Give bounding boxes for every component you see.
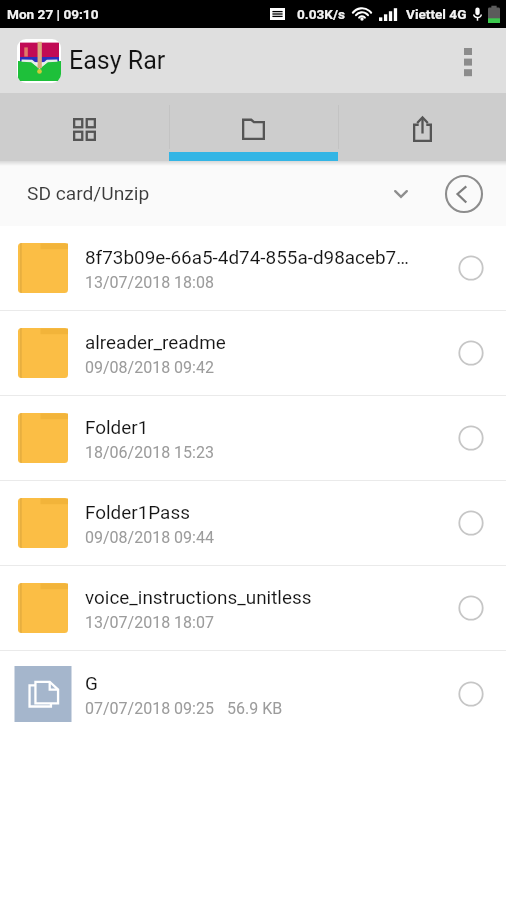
staticText: Mon 27 | 09:10 — [7, 6, 99, 22]
button[interactable]: Grid view — [0, 93, 168, 161]
button[interactable]: Select Folder1 — [449, 416, 493, 460]
button[interactable]: voice_instructions_unitless — [0, 566, 506, 651]
button[interactable]: 8f73b09e-66a5-4d74-855a-d98aceb7… — [0, 226, 506, 311]
staticText: Viettel 4G — [406, 6, 467, 22]
staticText: SD card/Unzip — [27, 182, 150, 205]
staticText: 18/06/2018 15:23 — [85, 443, 214, 462]
button[interactable]: alreader_readme — [0, 311, 506, 396]
button[interactable]: Select voice_instructions_unitless — [449, 586, 493, 630]
staticText: 09/08/2018 09:42 — [85, 358, 214, 377]
button[interactable]: Share — [337, 93, 506, 161]
staticText: 0.03K/s — [297, 6, 346, 22]
button[interactable]: Select 8f73b09e-66a5-4d74-855a-d98aceb7… — [449, 246, 493, 290]
staticText: voice_instructions_unitless — [85, 586, 312, 608]
staticText: 13/07/2018 18:08 — [85, 273, 214, 292]
staticText: G — [85, 672, 98, 694]
button[interactable]: Folder1 — [0, 396, 506, 481]
button[interactable]: Back — [440, 170, 488, 218]
staticText: 09/08/2018 09:44 — [85, 528, 214, 547]
button[interactable]: More options — [429, 28, 506, 93]
staticText: 8f73b09e-66a5-4d74-855a-d98aceb7… — [85, 246, 409, 268]
button[interactable]: Select alreader_readme — [449, 331, 493, 375]
staticText: 56.9 KB — [227, 699, 283, 718]
staticText: Folder1Pass — [85, 501, 190, 523]
staticText: Folder1 — [85, 416, 149, 438]
staticText: 07/07/2018 09:25 — [85, 699, 214, 718]
staticText: alreader_readme — [85, 331, 226, 353]
button[interactable]: Select Folder1Pass — [449, 501, 493, 545]
button[interactable]: Select G — [449, 672, 493, 716]
button[interactable]: Folders — [168, 93, 337, 161]
staticText: Easy Rar — [69, 46, 166, 75]
button[interactable]: G — [0, 651, 506, 736]
button[interactable]: Expand path — [382, 175, 419, 212]
button[interactable]: Folder1Pass — [0, 481, 506, 566]
staticText: 13/07/2018 18:07 — [85, 613, 214, 632]
